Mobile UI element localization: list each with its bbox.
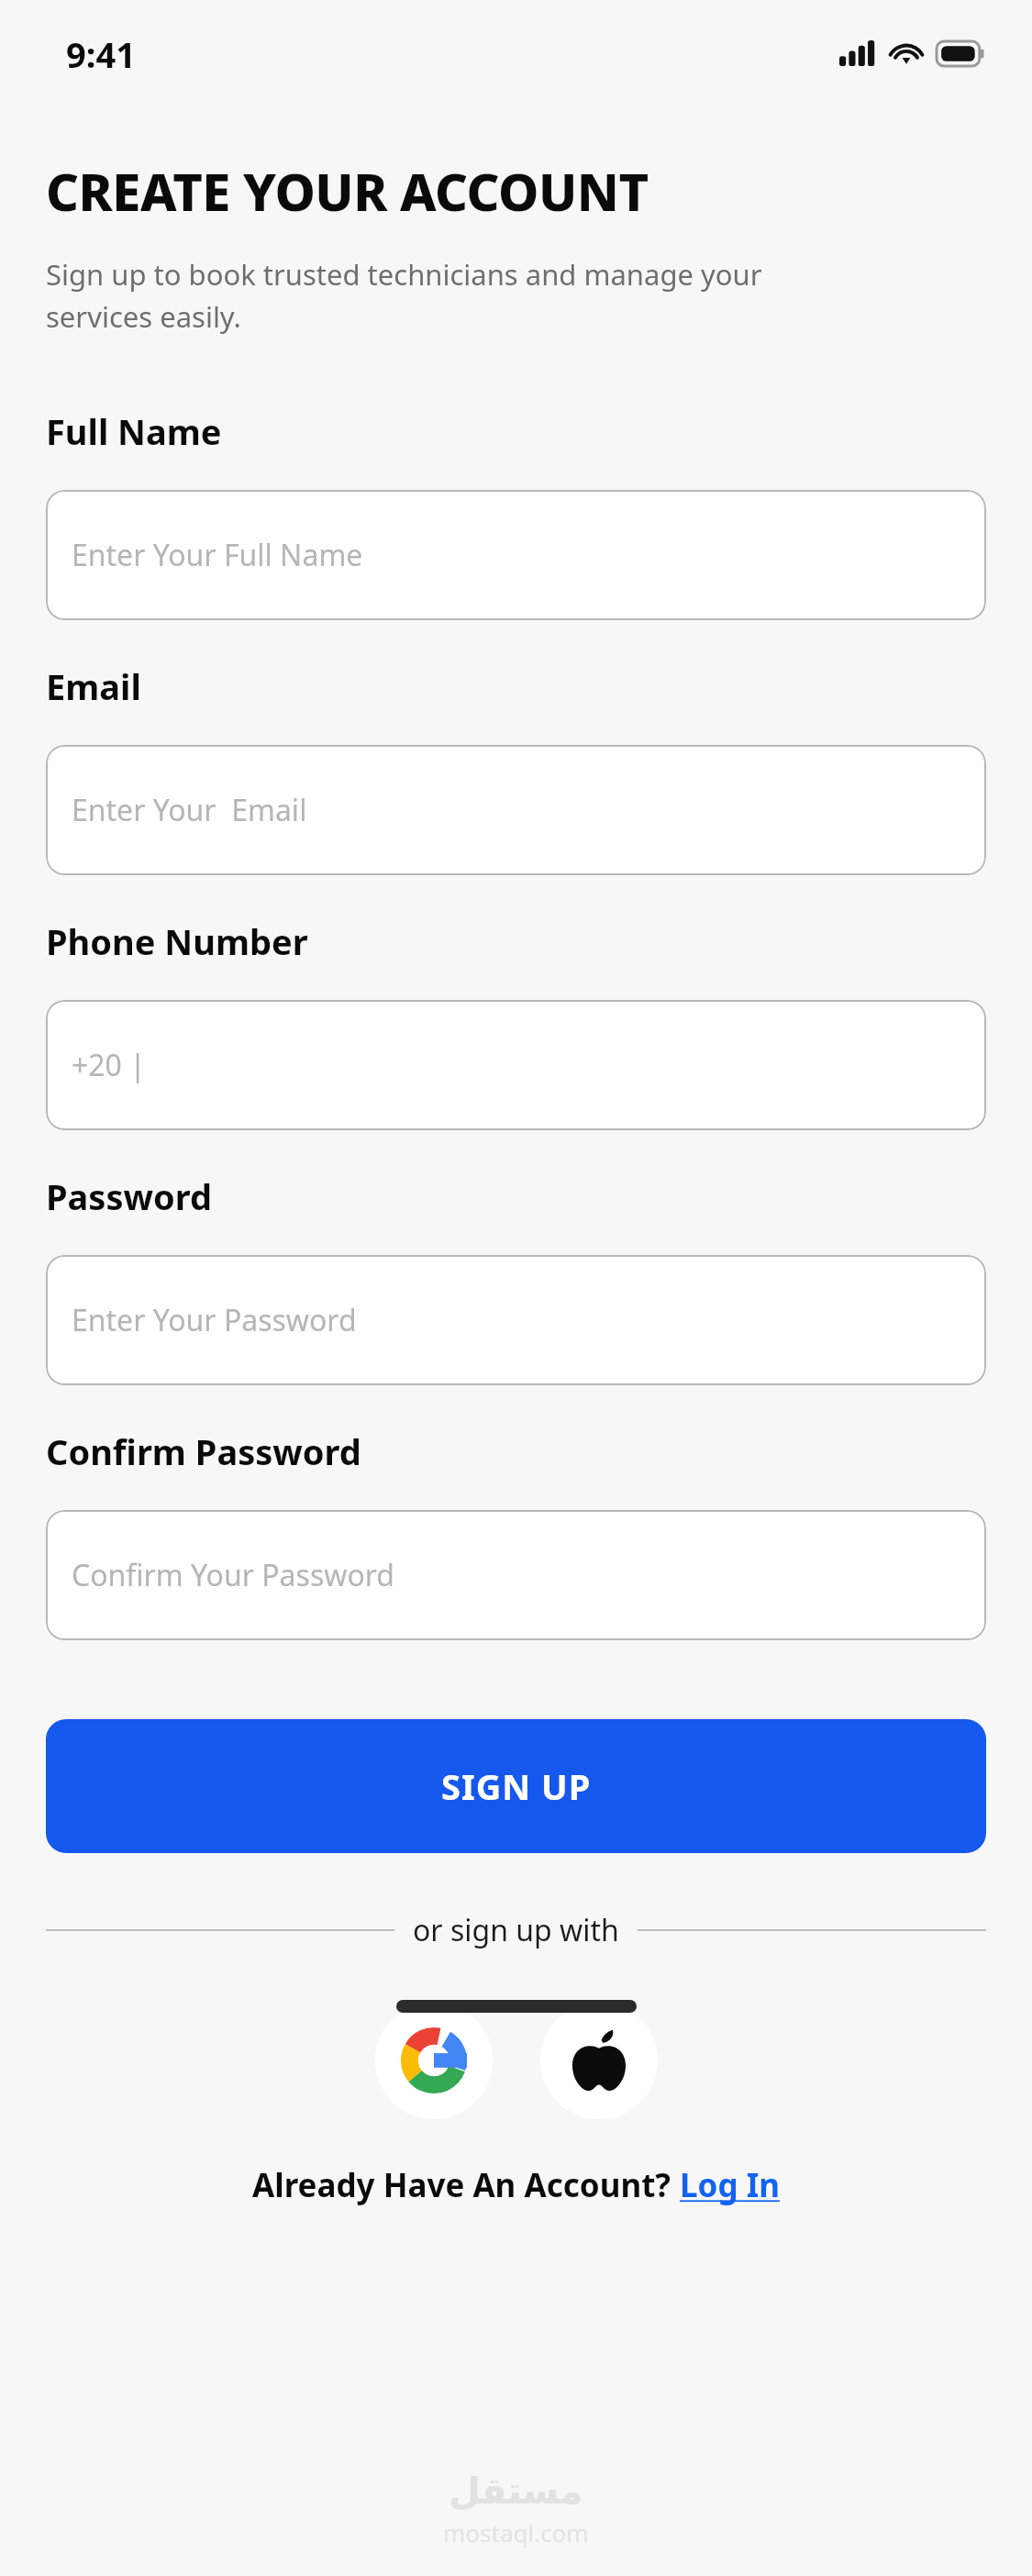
staticText: SIGN UP <box>441 1762 592 1810</box>
button[interactable]: +20 | <box>46 1000 986 1130</box>
staticText: Enter Your Email <box>72 790 307 830</box>
staticText: Password <box>46 1172 213 1220</box>
staticText: Sign up to book trusted technicians and … <box>46 255 762 336</box>
staticText: Phone Number <box>46 917 308 965</box>
button[interactable]: Enter Your Email <box>46 745 986 875</box>
staticText: 9:41 <box>66 30 136 78</box>
staticText: Enter Your Password <box>72 1300 357 1340</box>
button[interactable]: Enter Your Full Name <box>46 490 986 620</box>
staticText: Log In <box>680 2163 781 2207</box>
staticText: mostaql.com <box>443 2516 589 2548</box>
button[interactable]: Already Have An Account? <box>252 2163 781 2207</box>
button[interactable]: Sign up with Google <box>375 2002 493 2119</box>
staticText: Already Have An Account? <box>252 2163 680 2207</box>
button[interactable]: Sign up with Apple <box>540 2002 658 2119</box>
staticText: Email <box>46 662 141 710</box>
button[interactable]: Enter Your Password <box>46 1255 986 1385</box>
staticText: Confirm Your Password <box>72 1555 395 1595</box>
staticText: or sign up with <box>413 1910 619 1950</box>
staticText: CREATE YOUR ACCOUNT <box>46 156 649 226</box>
staticText: Full Name <box>46 407 222 455</box>
staticText: مستقل <box>449 2470 583 2513</box>
staticText: +20 | <box>72 1045 146 1085</box>
staticText: Confirm Password <box>46 1427 361 1475</box>
staticText: Enter Your Full Name <box>72 535 363 575</box>
button[interactable]: Confirm Your Password <box>46 1510 986 1640</box>
button[interactable]: SIGN UP <box>46 1719 986 1853</box>
